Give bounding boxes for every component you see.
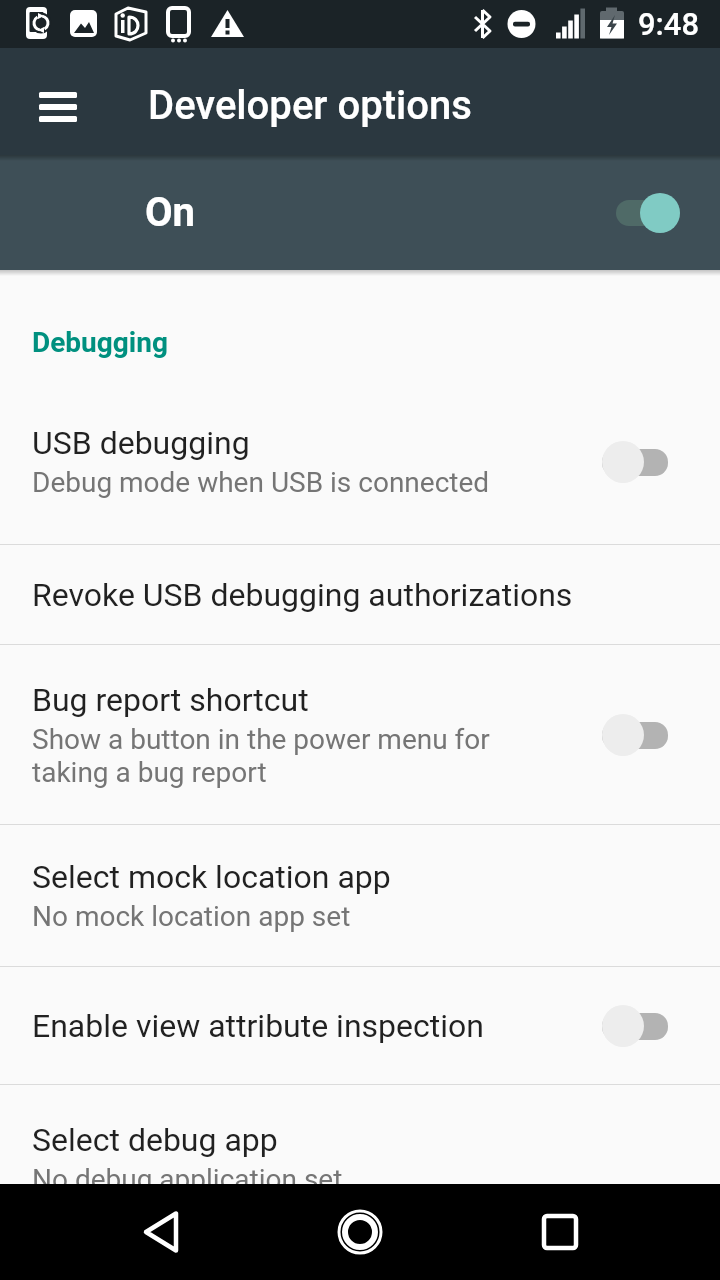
staticText: 9:48 bbox=[638, 6, 700, 42]
staticText: Enable view attribute inspection bbox=[32, 1007, 484, 1045]
staticText: No mock location app set bbox=[32, 900, 351, 933]
staticText: Revoke USB debugging authorizations bbox=[32, 576, 573, 614]
staticText: No debug application set bbox=[32, 1163, 343, 1184]
staticText: Debug mode when USB is connected bbox=[32, 466, 490, 499]
staticText: Show a button in the power menu for taki… bbox=[32, 723, 490, 789]
staticText: Select mock location app bbox=[32, 858, 391, 896]
staticText: USB debugging bbox=[32, 424, 250, 462]
staticText: Developer options bbox=[148, 82, 472, 129]
staticText: Select debug app bbox=[32, 1121, 278, 1159]
staticText: Debugging bbox=[32, 326, 168, 359]
staticText: Bug report shortcut bbox=[32, 681, 309, 719]
staticText: On bbox=[145, 189, 196, 236]
